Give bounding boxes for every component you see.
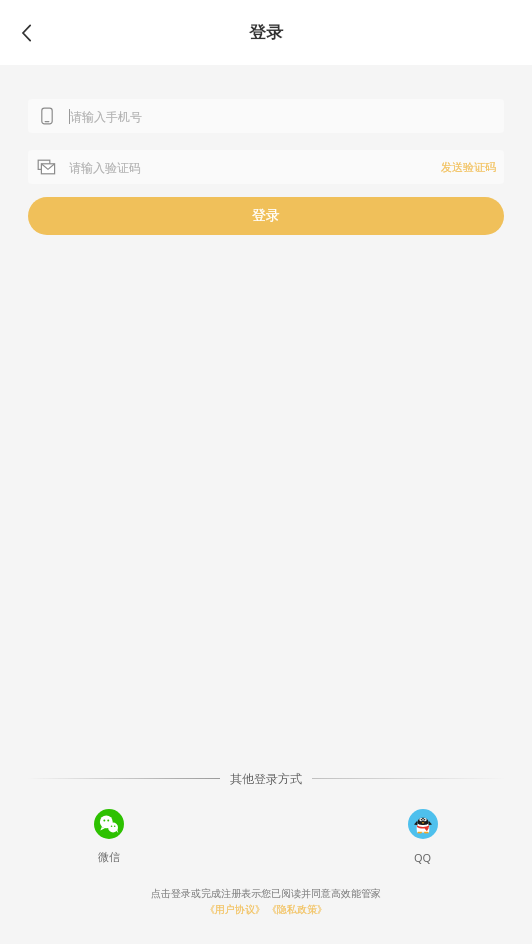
staticText: 登录	[252, 207, 280, 225]
button[interactable]: Back	[10, 16, 44, 50]
button[interactable]: 《隐私政策》	[267, 903, 327, 916]
staticText: 发送验证码	[441, 160, 496, 174]
button[interactable]: 登录	[28, 197, 504, 235]
staticText: QQ	[414, 850, 432, 865]
button[interactable]: 《用户协议》	[205, 903, 265, 916]
button[interactable]: QQ login	[404, 805, 442, 869]
staticText: 其他登录方式	[230, 771, 302, 786]
button[interactable]: 发送验证码	[433, 160, 504, 174]
button[interactable]: WeChat login	[90, 805, 128, 868]
staticText: 微信	[98, 850, 120, 864]
button[interactable]: 请输入手机号	[28, 99, 504, 133]
button[interactable]: 请输入验证码	[28, 150, 504, 184]
staticText: 《用户协议》	[205, 903, 265, 916]
staticText: 请输入验证码	[69, 160, 141, 175]
staticText: 请输入手机号	[70, 109, 142, 124]
staticText: 《隐私政策》	[267, 903, 327, 916]
staticText: 点击登录或完成注册表示您已阅读并同意高效能管家	[0, 887, 532, 900]
staticText: 登录	[249, 22, 283, 43]
